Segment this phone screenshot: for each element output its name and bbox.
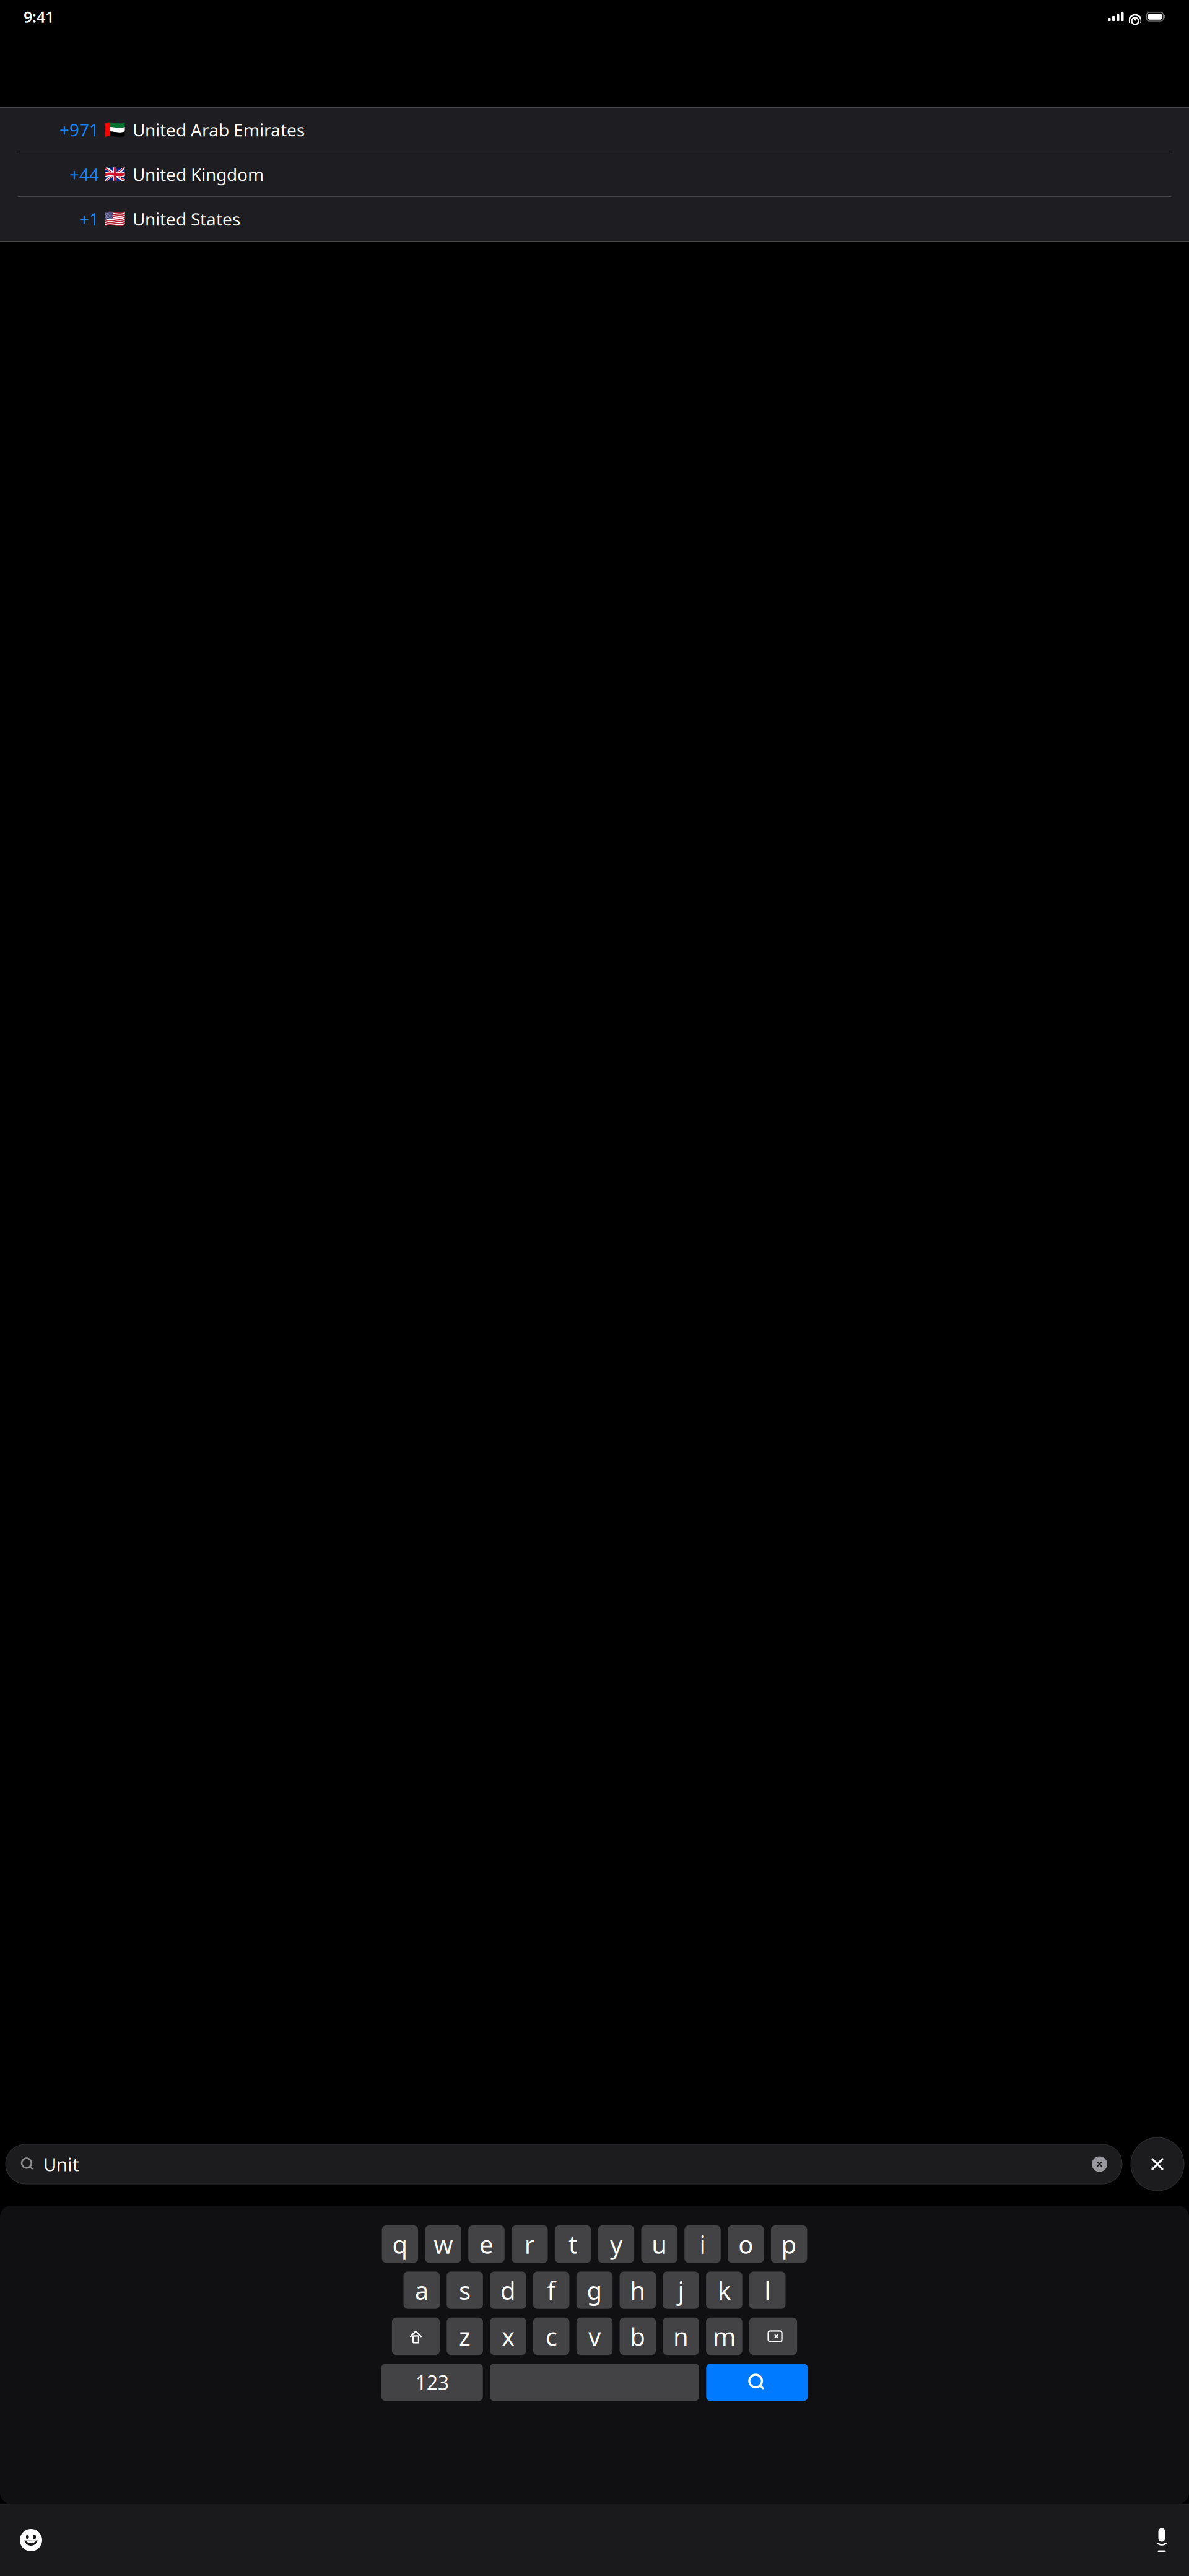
staticText: +44 [69, 163, 99, 186]
button[interactable]: j [663, 2272, 699, 2309]
staticText: j [678, 2274, 684, 2307]
button[interactable]: +44 [0, 152, 1189, 196]
staticText: 🇦🇪 [104, 120, 126, 140]
button[interactable]: +1 [0, 197, 1189, 241]
staticText: United Kingdom [133, 163, 264, 186]
button[interactable]: x [490, 2318, 526, 2355]
button[interactable]: Dictation [1154, 2528, 1169, 2552]
staticText: +1 [79, 207, 99, 230]
staticText: u [652, 2228, 667, 2261]
staticText: 123 [415, 2369, 449, 2396]
staticText: s [459, 2274, 471, 2307]
button[interactable]: v [576, 2318, 613, 2355]
button[interactable]: +971 [0, 108, 1189, 152]
staticText: e [479, 2228, 494, 2261]
button[interactable]: Search [706, 2364, 808, 2401]
staticText: Unit [43, 2152, 79, 2176]
button[interactable]: h [620, 2272, 656, 2309]
button[interactable]: w [425, 2225, 461, 2263]
staticText: y [610, 2228, 622, 2261]
staticText: c [545, 2320, 557, 2353]
button[interactable]: c [533, 2318, 569, 2355]
button[interactable]: b [620, 2318, 656, 2355]
staticText: l [764, 2274, 770, 2307]
staticText: United Arab Emirates [133, 118, 305, 141]
button[interactable]: s [447, 2272, 483, 2309]
staticText: n [673, 2320, 689, 2353]
staticText: 🇬🇧 [104, 164, 126, 184]
button[interactable]: m [706, 2318, 742, 2355]
staticText: h [630, 2274, 645, 2307]
button[interactable]: n [663, 2318, 699, 2355]
staticText: a [415, 2274, 428, 2307]
staticText: v [588, 2320, 601, 2353]
staticText: o [738, 2228, 753, 2261]
button[interactable]: r [512, 2225, 548, 2263]
button[interactable]: q [382, 2225, 418, 2263]
button[interactable]: Close [1131, 2137, 1184, 2191]
button[interactable]: e [468, 2225, 505, 2263]
button[interactable]: a [404, 2272, 440, 2309]
button[interactable]: y [598, 2225, 634, 2263]
staticText: r [524, 2228, 535, 2261]
staticText: x [502, 2320, 515, 2353]
button[interactable]: p [771, 2225, 807, 2263]
staticText: p [781, 2228, 797, 2261]
button[interactable]: f [533, 2272, 569, 2309]
staticText: k [718, 2274, 731, 2307]
button[interactable]: i [684, 2225, 721, 2263]
button[interactable]: o [728, 2225, 764, 2263]
button[interactable]: u [641, 2225, 677, 2263]
button[interactable]: t [555, 2225, 591, 2263]
button[interactable]: l [749, 2272, 786, 2309]
button[interactable]: d [490, 2272, 526, 2309]
staticText: +971 [59, 118, 99, 141]
button[interactable]: Numbers [381, 2364, 483, 2401]
staticText: d [500, 2274, 516, 2307]
button[interactable]: Delete [749, 2318, 797, 2355]
button[interactable]: Emoji [20, 2529, 42, 2551]
staticText: q [392, 2228, 408, 2261]
staticText: m [713, 2320, 736, 2353]
staticText: g [587, 2274, 602, 2307]
staticText: United States [133, 207, 240, 230]
staticText: t [569, 2228, 577, 2261]
staticText: w [434, 2228, 453, 2261]
staticText: z [459, 2320, 471, 2353]
staticText: 9:41 [24, 6, 54, 27]
staticText: 🇺🇸 [104, 209, 126, 229]
button[interactable]: z [447, 2318, 483, 2355]
staticText: i [699, 2228, 706, 2261]
button[interactable]: g [576, 2272, 613, 2309]
staticText: f [547, 2274, 556, 2307]
button[interactable]: Shift [392, 2318, 440, 2355]
staticText: b [630, 2320, 645, 2353]
button[interactable]: Unit [6, 2144, 1122, 2184]
button[interactable]: k [706, 2272, 742, 2309]
